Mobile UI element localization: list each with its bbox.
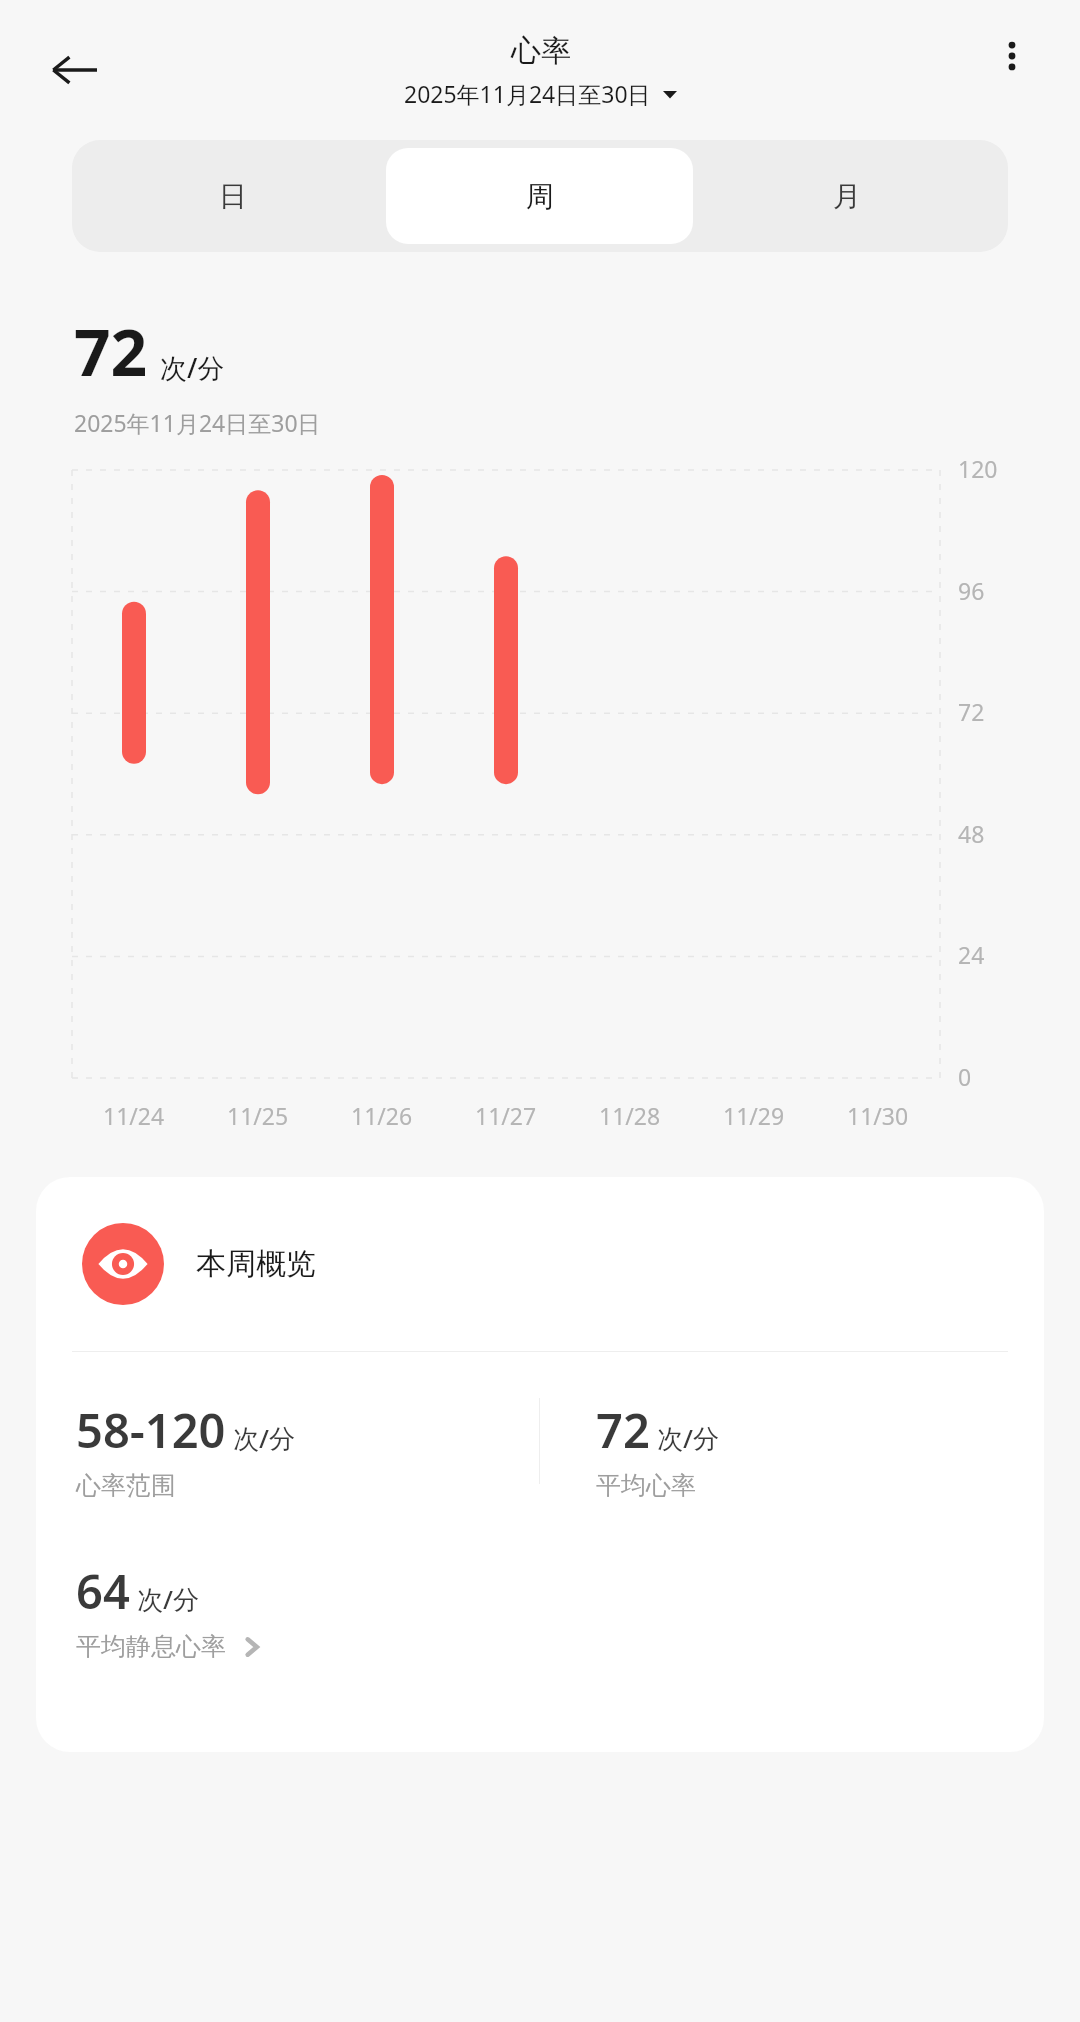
- staticText: 11/28: [599, 1100, 661, 1131]
- button[interactable]: 周: [386, 148, 693, 244]
- staticText: 次/分: [137, 1581, 200, 1617]
- button[interactable]: 2025年11月24日至30日: [404, 78, 677, 109]
- staticText: 11/27: [475, 1100, 537, 1131]
- button[interactable]: 64: [36, 1559, 1044, 1662]
- button[interactable]: Back: [38, 34, 110, 106]
- staticText: 2025年11月24日至30日: [404, 78, 651, 109]
- staticText: 11/30: [847, 1100, 909, 1131]
- staticText: 11/29: [723, 1100, 785, 1131]
- staticText: 72: [596, 1398, 650, 1462]
- staticText: 心率: [511, 32, 571, 70]
- staticText: 58-120: [76, 1398, 226, 1462]
- button[interactable]: 月: [693, 148, 1000, 244]
- staticText: 周: [526, 179, 554, 214]
- staticText: 11/26: [351, 1100, 413, 1131]
- staticText: 月: [833, 179, 861, 214]
- staticText: 64: [76, 1559, 130, 1623]
- staticText: 本周概览: [196, 1245, 316, 1283]
- staticText: 2025年11月24日至30日: [74, 407, 321, 438]
- button[interactable]: 58-120: [36, 1398, 539, 1501]
- staticText: 心率范围: [76, 1470, 176, 1501]
- staticText: 48: [958, 818, 985, 849]
- button[interactable]: 日: [80, 148, 386, 244]
- staticText: 72: [74, 308, 148, 395]
- staticText: 次/分: [233, 1420, 296, 1456]
- staticText: 24: [958, 939, 985, 970]
- staticText: 72: [958, 696, 985, 727]
- staticText: 11/25: [227, 1100, 289, 1131]
- button[interactable]: 本周概览: [36, 1223, 1044, 1305]
- staticText: 96: [958, 575, 985, 606]
- button[interactable]: More options: [978, 22, 1046, 90]
- staticText: 0: [958, 1061, 972, 1092]
- staticText: 日: [219, 179, 247, 214]
- staticText: 次/分: [160, 349, 225, 386]
- staticText: 平均心率: [596, 1470, 696, 1501]
- staticText: 平均静息心率: [76, 1631, 226, 1662]
- staticText: 11/24: [103, 1100, 165, 1131]
- staticText: 次/分: [657, 1420, 720, 1456]
- button[interactable]: 72: [540, 1398, 1044, 1501]
- staticText: 120: [958, 453, 998, 484]
